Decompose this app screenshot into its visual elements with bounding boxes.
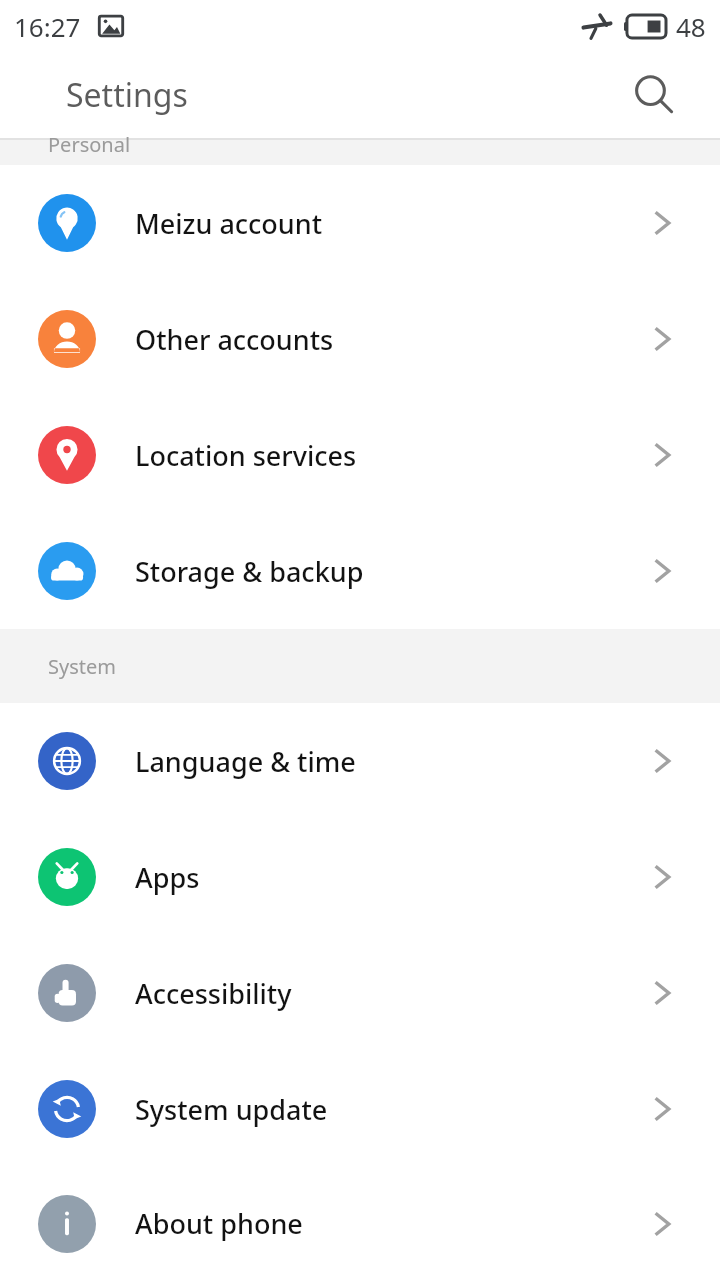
staticText: About phone xyxy=(135,1205,642,1242)
button[interactable]: Language & time xyxy=(0,703,720,819)
staticText: 48 xyxy=(676,9,706,44)
staticText: Apps xyxy=(135,859,642,896)
button[interactable]: Storage & backup xyxy=(0,513,720,629)
button[interactable]: Other accounts xyxy=(0,281,720,397)
button[interactable]: Apps xyxy=(0,819,720,935)
staticText: System xyxy=(48,653,116,680)
staticText: Settings xyxy=(66,73,188,117)
staticText: Meizu account xyxy=(135,205,642,242)
button[interactable]: Meizu account xyxy=(0,165,720,281)
staticText: Personal xyxy=(48,131,131,158)
button[interactable]: Search xyxy=(626,67,682,123)
staticText: Storage & backup xyxy=(135,553,642,590)
staticText: Location services xyxy=(135,437,642,474)
button[interactable]: Location services xyxy=(0,397,720,513)
button[interactable]: Accessibility xyxy=(0,935,720,1051)
button[interactable]: About phone xyxy=(0,1167,720,1280)
staticText: Accessibility xyxy=(135,975,642,1012)
staticText: System update xyxy=(135,1091,642,1128)
staticText: 16:27 xyxy=(14,9,81,44)
staticText: Language & time xyxy=(135,743,642,780)
button[interactable]: System update xyxy=(0,1051,720,1167)
staticText: Other accounts xyxy=(135,321,642,358)
